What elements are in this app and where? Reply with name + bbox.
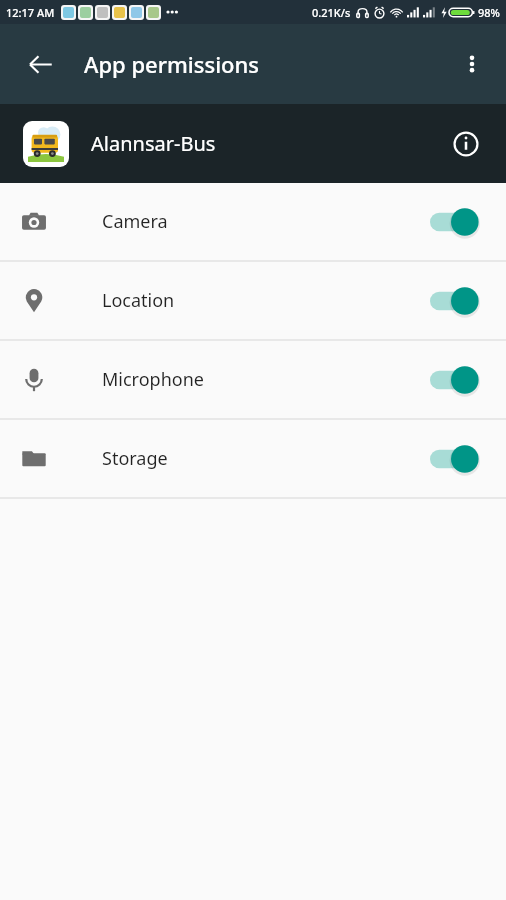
staticText: 98% [478, 5, 500, 20]
button[interactable]: Microphone [0, 341, 506, 418]
button[interactable]: More options [448, 40, 496, 88]
staticText: Camera [102, 209, 168, 234]
staticText: 12:17 AM [6, 5, 55, 20]
staticText: Storage [102, 446, 168, 471]
button[interactable]: Camera [0, 183, 506, 260]
staticText: Location [102, 288, 175, 313]
button[interactable]: Storage [0, 420, 506, 497]
button[interactable]: Alannsar-Bus [0, 104, 506, 183]
staticText: Microphone [102, 367, 204, 392]
staticText: Alannsar-Bus [91, 130, 216, 157]
button[interactable]: Location [0, 262, 506, 339]
staticText: 0.21K/s [312, 5, 351, 20]
button[interactable]: Storage permission toggle [428, 439, 484, 479]
staticText: App permissions [84, 49, 260, 79]
button[interactable]: Location permission toggle [428, 281, 484, 321]
button[interactable]: Back [14, 38, 66, 90]
button[interactable]: Camera permission toggle [428, 202, 484, 242]
button[interactable]: App info [444, 122, 488, 166]
button[interactable]: Microphone permission toggle [428, 360, 484, 400]
